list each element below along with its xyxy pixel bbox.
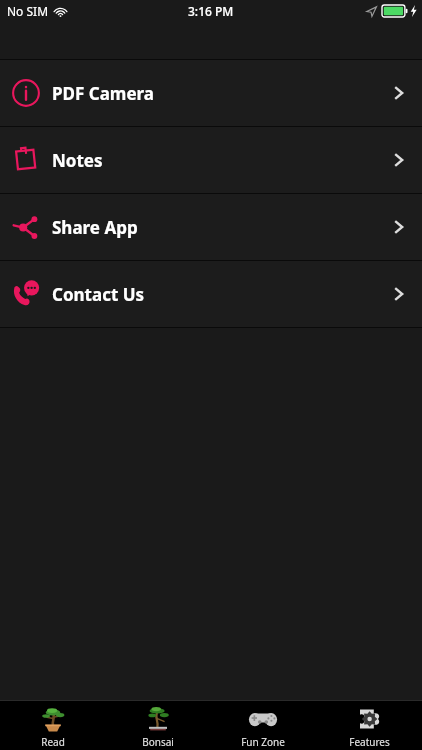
staticText: Share App [52, 216, 138, 239]
button[interactable]: Contact Us [0, 261, 422, 327]
staticText: Bonsai [142, 735, 174, 749]
button[interactable]: PDF Camera [0, 60, 422, 126]
button[interactable]: Share App [0, 194, 422, 260]
staticText: No SIM [7, 3, 49, 19]
button[interactable]: Fun Zone [210, 701, 316, 750]
button[interactable]: Notes [0, 127, 422, 193]
button[interactable]: Bonsai [105, 701, 210, 750]
staticText: Read [41, 735, 65, 749]
staticText: Contact Us [52, 283, 145, 306]
staticText: 3:16 PM [188, 3, 234, 19]
button[interactable]: Features [316, 701, 422, 750]
staticText: Features [349, 735, 390, 749]
button[interactable]: Read [0, 701, 105, 750]
staticText: Fun Zone [241, 735, 285, 749]
staticText: Notes [52, 149, 103, 172]
staticText: PDF Camera [52, 82, 155, 105]
